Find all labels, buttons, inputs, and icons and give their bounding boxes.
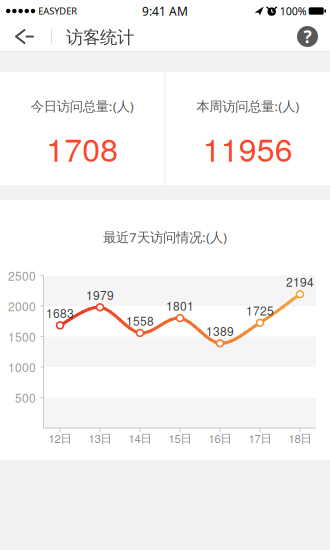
staticText: 15日 [168,430,191,446]
staticText: 1801 [166,297,194,314]
staticText: 访客统计 [66,27,134,48]
staticText: 1500 [8,328,36,345]
staticText: 1558 [126,312,154,329]
staticText: 本周访问总量:(人) [196,97,299,115]
staticText: 13日 [88,430,111,446]
staticText: 18日 [288,430,311,446]
staticText: 1725 [246,302,274,319]
staticText: 2500 [8,267,36,284]
staticText: 1708 [46,125,118,171]
staticText: 100% [280,4,307,18]
staticText: 500 [15,389,36,406]
staticText: ? [303,25,311,48]
staticText: 最近7天访问情况:(人) [103,228,227,246]
button[interactable]: ? [297,25,330,48]
staticText: 1000 [8,358,36,376]
staticText: 1979 [86,286,114,303]
staticText: 1389 [206,322,234,339]
staticText: 17日 [248,430,271,446]
staticText: 2000 [8,297,36,315]
staticText: 14日 [128,430,151,446]
staticText: 9:41 AM [142,3,188,19]
staticText: 16日 [208,430,231,446]
staticText: 12日 [48,430,71,446]
button[interactable] [0,21,51,51]
staticText: 今日访问总量:(人) [31,97,134,115]
staticText: 1683 [46,304,74,321]
staticText: 11956 [203,125,293,171]
staticText: EASYDER [38,5,77,17]
staticText: 2194 [286,273,314,290]
